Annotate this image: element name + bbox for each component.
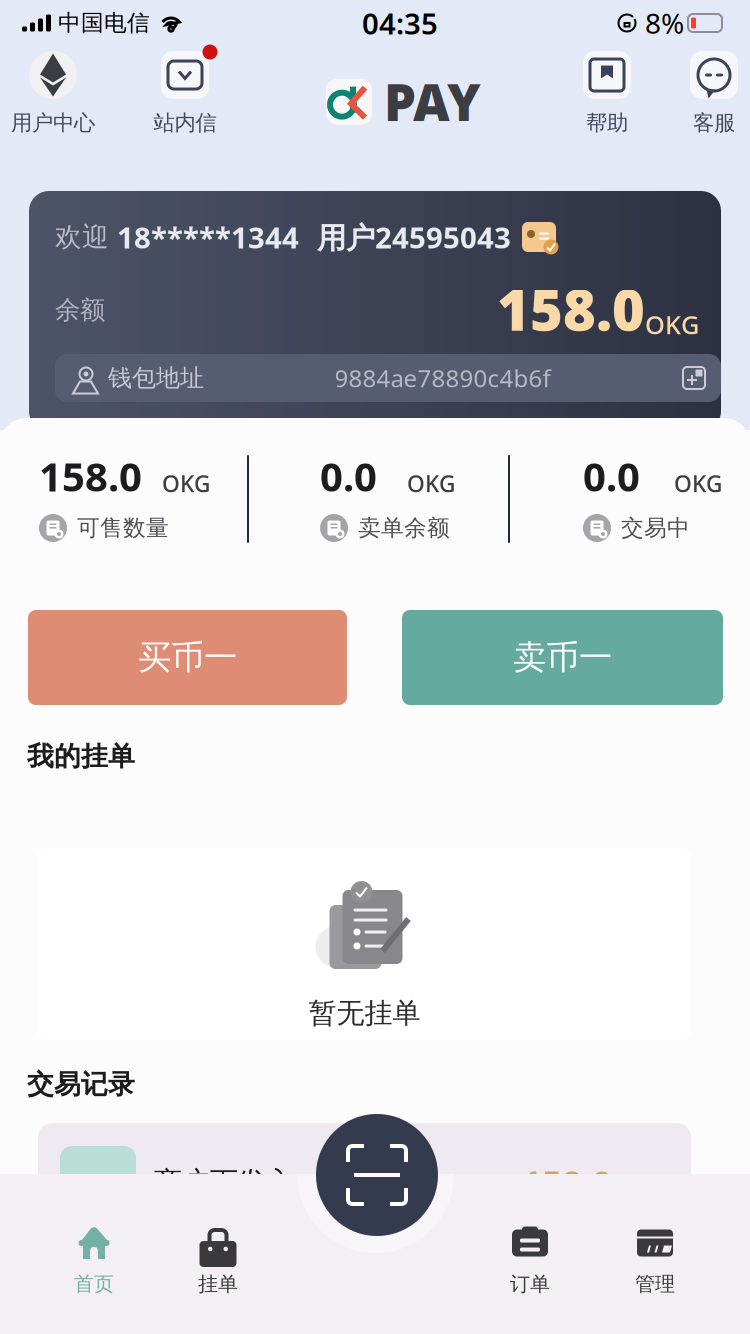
staticText: 商户下发入 [154, 1165, 294, 1199]
button[interactable]: 管理 [600, 1219, 710, 1303]
staticText: 用户24595043 [299, 217, 511, 256]
staticText: 管理 [635, 1272, 675, 1296]
staticText: 暂无挂单 [308, 996, 420, 1030]
button[interactable]: 扫一扫 [316, 1114, 438, 1236]
staticText: 可售数量 [77, 514, 169, 542]
staticText: 我的挂单 [27, 740, 135, 773]
staticText: PAY [384, 68, 481, 135]
staticText: 交易中 [621, 514, 690, 542]
staticText: 帮助 [586, 110, 628, 136]
button[interactable]: 商户下发入 [38, 1123, 691, 1241]
staticText: 18*****1344 [117, 217, 299, 256]
staticText: 欢迎 [55, 221, 117, 253]
staticText: 8% [638, 4, 684, 42]
staticText: 卖币一 [513, 637, 612, 678]
staticText: 中国电信 [51, 9, 150, 37]
staticText: OKG [162, 468, 210, 499]
staticText: 0.0 [320, 449, 377, 502]
staticText: 站内信 [153, 110, 216, 136]
button[interactable]: 订单 [475, 1219, 585, 1303]
staticText: 用户中心 [11, 110, 95, 136]
staticText: 客服 [693, 110, 735, 136]
staticText: 订单 [510, 1272, 550, 1296]
staticText: 158.0 [497, 272, 645, 346]
staticText: 余额 [55, 294, 105, 325]
staticText: 钱包地址 [101, 363, 204, 393]
button[interactable]: 买币一 [28, 610, 347, 705]
staticText: 买币一 [138, 637, 237, 678]
staticText: 交易记录 [27, 1068, 135, 1101]
staticText: 卖单余额 [358, 514, 450, 542]
staticText: +158.0 [502, 1159, 612, 1205]
staticText: 9884ae78890c4b6f [334, 362, 550, 394]
staticText: 158.0 [39, 449, 142, 502]
staticText: 挂单 [198, 1272, 238, 1296]
button[interactable]: 用户中心 [0, 50, 106, 140]
button[interactable]: 客服 [661, 50, 750, 140]
staticText: 04:35 [362, 3, 438, 42]
staticText: OKG [674, 468, 722, 499]
staticText: OKG [645, 307, 699, 341]
button[interactable]: 挂单 [163, 1219, 273, 1303]
staticText: 0.0 [583, 449, 640, 502]
button[interactable]: 站内信 [132, 50, 238, 140]
staticText: OKG [407, 468, 455, 499]
button[interactable]: 首页 [39, 1219, 149, 1303]
button[interactable]: 卖币一 [402, 610, 723, 705]
staticText: 首页 [74, 1272, 114, 1296]
button[interactable]: 帮助 [554, 50, 660, 140]
